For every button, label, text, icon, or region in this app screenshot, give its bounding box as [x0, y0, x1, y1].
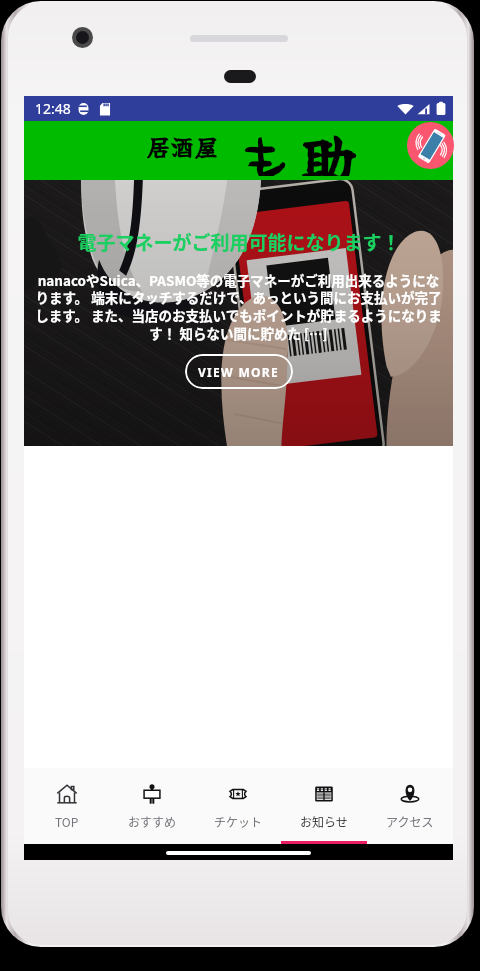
- staticText: 居酒屋: [146, 129, 218, 164]
- button[interactable]: VIEW MORE: [185, 354, 293, 389]
- button[interactable]: チケット: [195, 768, 281, 844]
- staticText: お知らせ: [300, 813, 348, 830]
- staticText: TOP: [55, 813, 79, 830]
- staticText: VIEW MORE: [198, 364, 280, 380]
- button[interactable]: アクセス: [367, 768, 453, 844]
- button[interactable]: Call: [407, 122, 454, 169]
- button[interactable]: おすすめ: [109, 768, 195, 844]
- staticText: も: [236, 117, 290, 176]
- button[interactable]: お知らせ: [281, 768, 367, 844]
- staticText: 12:48: [35, 99, 71, 118]
- button[interactable]: TOP: [24, 768, 109, 844]
- staticText: チケット: [214, 813, 263, 830]
- staticText: nanacoやSuica、PASMO等の電子マネーがご利用出来るようにな ります…: [35, 270, 442, 343]
- staticText: 電子マネーがご利用可能になります！: [77, 228, 401, 256]
- staticText: 助: [300, 117, 356, 176]
- staticText: おすすめ: [128, 813, 177, 830]
- staticText: アクセス: [386, 813, 434, 830]
